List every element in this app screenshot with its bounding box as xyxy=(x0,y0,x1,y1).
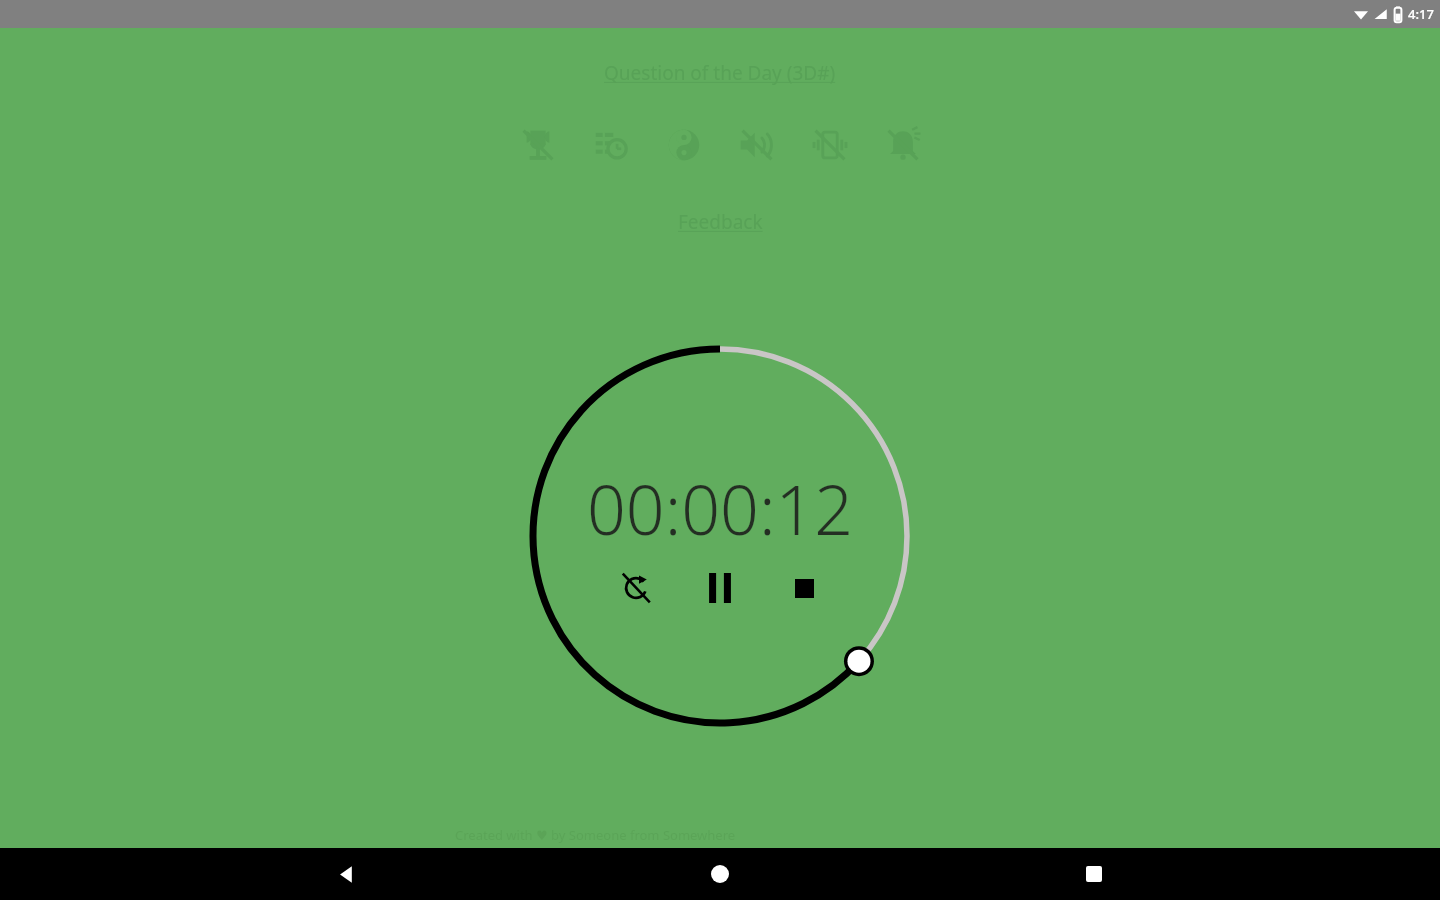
button[interactable]: Back xyxy=(318,848,374,900)
button[interactable]: Pause xyxy=(697,565,743,611)
staticText: 4:17 xyxy=(1408,5,1434,23)
button[interactable]: Question of the Day (3D#) xyxy=(604,60,836,86)
button[interactable]: Recents xyxy=(1066,848,1122,900)
button[interactable]: Feedback xyxy=(678,209,763,235)
button[interactable]: Stop xyxy=(781,565,827,611)
staticText: 00:00:12 xyxy=(587,462,854,555)
button[interactable]: Notifications off xyxy=(879,121,927,169)
button[interactable]: Home xyxy=(692,848,748,900)
button[interactable]: History xyxy=(587,121,635,169)
button[interactable]: Vibration off xyxy=(806,121,854,169)
button[interactable]: Mute xyxy=(733,121,781,169)
button[interactable]: Balance xyxy=(660,121,708,169)
button[interactable]: Repeat off xyxy=(613,565,659,611)
button[interactable]: Trophy xyxy=(514,121,562,169)
